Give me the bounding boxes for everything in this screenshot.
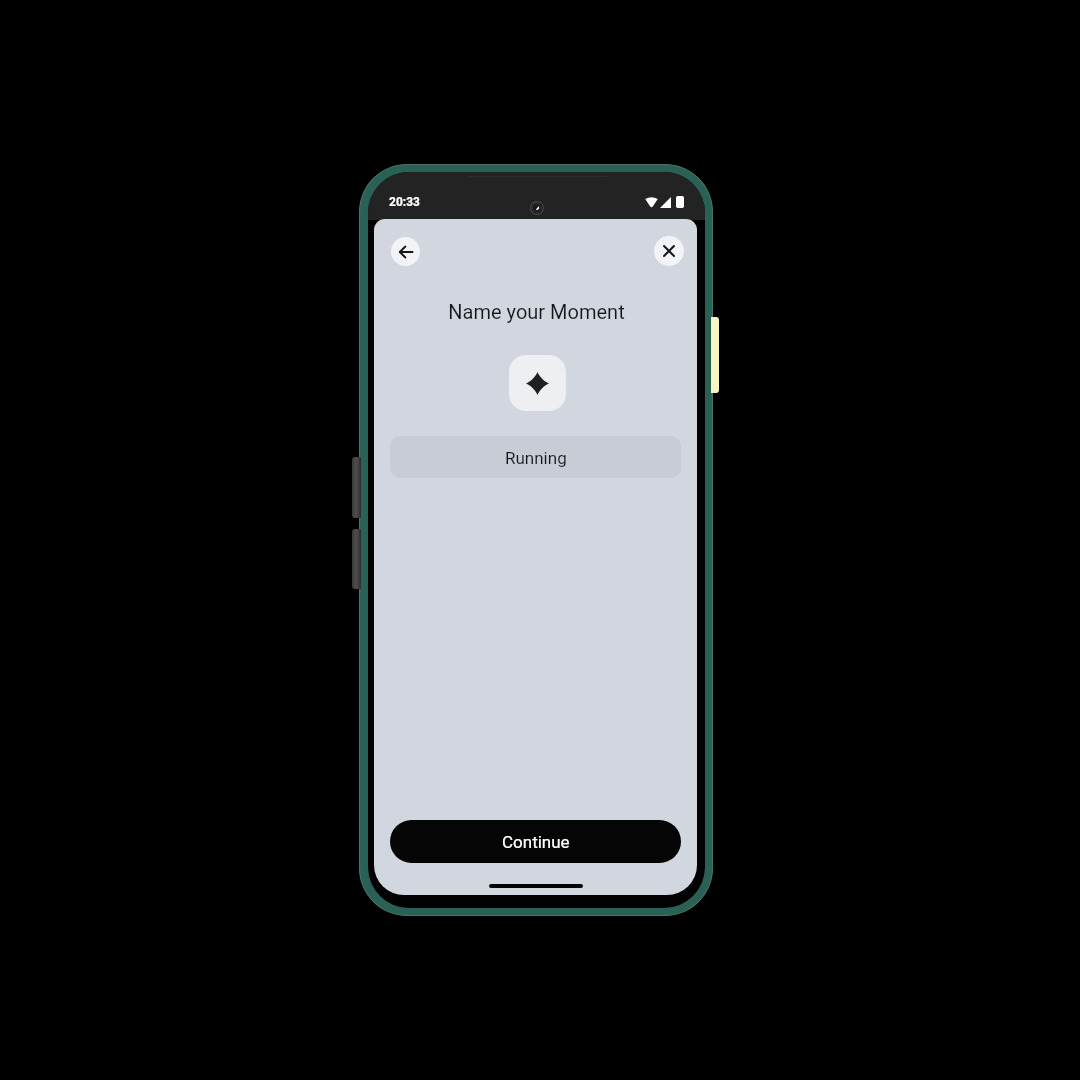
button[interactable]: Close — [654, 236, 684, 266]
button[interactable]: Running — [390, 436, 681, 478]
staticText: Continue — [502, 832, 570, 852]
button[interactable]: Continue — [390, 820, 681, 863]
button[interactable]: Suggest a name — [509, 355, 566, 411]
button[interactable]: Back — [391, 237, 420, 266]
staticText: Running — [505, 448, 567, 468]
staticText: Name your Moment — [375, 300, 697, 323]
staticText: 20:33 — [389, 195, 420, 209]
